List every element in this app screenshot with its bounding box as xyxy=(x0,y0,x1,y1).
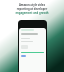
staticText: Amazon-style video xyxy=(1,3,63,7)
staticText: engagement and growth xyxy=(1,11,63,15)
staticText: reporting at developer xyxy=(1,7,63,11)
